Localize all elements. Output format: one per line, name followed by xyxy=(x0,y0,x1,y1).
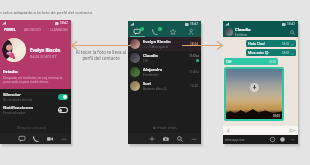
staticText: Excelente xyxy=(143,72,159,77)
button[interactable]: Calls xyxy=(146,27,164,37)
staticText: Hola Clau! xyxy=(248,41,266,46)
button[interactable]: Home xyxy=(279,136,286,143)
staticText: No recibirás alertas xyxy=(3,98,32,102)
button[interactable]: Chats xyxy=(128,27,146,37)
button[interactable]: Notificaciones xyxy=(0,103,71,116)
button[interactable]: Suri xyxy=(128,79,201,93)
button[interactable]: Alejandro xyxy=(128,65,201,79)
staticText: ✓✓ Claro que sí xyxy=(143,44,169,49)
staticText: 16:05a xyxy=(189,54,199,58)
staticText: 0424-5140107 xyxy=(30,54,57,59)
staticText: 18:53 xyxy=(273,114,280,118)
staticText: Claudia xyxy=(235,27,251,33)
staticText: LLAMADAS xyxy=(50,27,68,32)
staticText: Un color adaptado a la foto de perfil de… xyxy=(0,10,93,16)
staticText: 18:47 xyxy=(190,22,199,26)
staticText: Evelyn Rincón xyxy=(30,47,61,53)
button[interactable]: Starred xyxy=(164,27,182,37)
button[interactable]: Video call xyxy=(43,133,57,144)
staticText: 18:52 xyxy=(282,42,290,46)
button[interactable]: Message xyxy=(15,133,29,144)
staticText: Alejandro xyxy=(143,67,163,72)
staticText: Silenciar xyxy=(3,92,21,98)
staticText: 14:28 xyxy=(190,84,199,88)
staticText: Claudia xyxy=(143,53,158,58)
staticText: 2 xyxy=(159,27,161,31)
button[interactable]: Bloquear contacto xyxy=(17,125,47,130)
button[interactable]: Claudia xyxy=(128,51,201,65)
button[interactable]: Back xyxy=(269,136,276,143)
staticText: Personalizadas xyxy=(3,111,26,115)
button[interactable]: New chat xyxy=(145,133,159,144)
staticText: PERFIL xyxy=(4,27,16,32)
button[interactable]: LLAMADAS xyxy=(46,26,71,33)
button[interactable]: Search xyxy=(288,28,296,36)
staticText: Ok! xyxy=(143,58,149,63)
button[interactable]: More options xyxy=(187,133,201,144)
staticText: Mira esto 😊 xyxy=(248,50,269,55)
staticText: 3 xyxy=(141,27,143,31)
staticText: whatsapp.com xyxy=(225,138,245,142)
staticText: 18:47 xyxy=(287,22,296,26)
staticText: Ok! xyxy=(226,59,232,64)
staticText: Estado: xyxy=(3,69,19,75)
staticText: Ocupada, no molestar, no soy necesaria p… xyxy=(3,76,69,84)
staticText: Suri xyxy=(143,81,151,86)
button[interactable]: Silenciar xyxy=(0,90,71,103)
staticText: 18:24 xyxy=(190,42,199,46)
staticText: 15:40a xyxy=(189,70,199,74)
button[interactable]: Search xyxy=(173,133,187,144)
staticText: Buenos días 😊 xyxy=(143,86,167,91)
button[interactable]: Evelyn Rincón xyxy=(128,37,201,51)
button[interactable]: Archivar chats xyxy=(153,125,177,130)
staticText: Notificaciones xyxy=(3,105,33,111)
button[interactable]: Recents xyxy=(289,136,296,143)
staticText: Evelyn Rincón xyxy=(143,39,171,44)
staticText: 18:53 xyxy=(269,60,276,64)
button[interactable]: Call xyxy=(29,133,43,144)
staticText: 18:52 xyxy=(282,51,290,55)
staticText: Al tocar la foto te lleva al perfil del … xyxy=(71,49,131,61)
staticText: ARCHIVOS xyxy=(24,27,42,32)
staticText: 18:47 xyxy=(60,21,69,25)
button[interactable]: Camera xyxy=(159,133,173,144)
button[interactable]: ARCHIVOS xyxy=(20,26,46,33)
button[interactable]: Contacts xyxy=(182,27,200,37)
staticText: En línea xyxy=(235,33,247,37)
button[interactable]: PERFIL xyxy=(0,26,20,33)
button[interactable]: More options xyxy=(57,133,71,144)
